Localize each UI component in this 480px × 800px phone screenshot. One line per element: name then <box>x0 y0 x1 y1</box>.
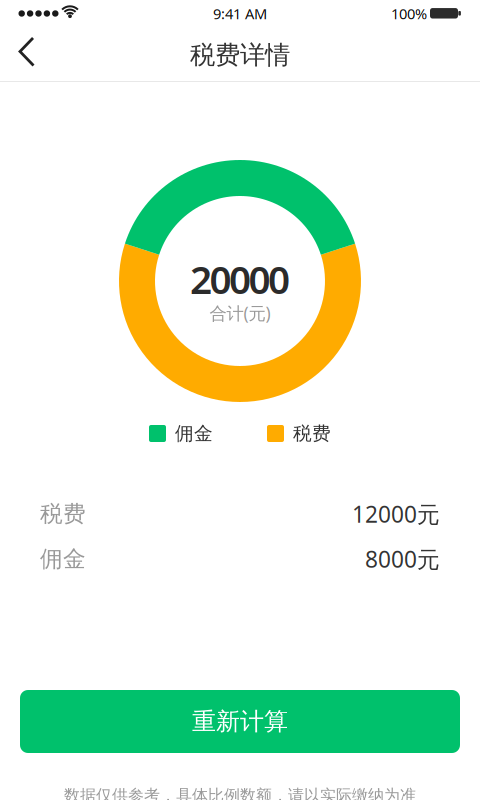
staticText: 合计(元) <box>209 301 270 324</box>
button[interactable]: 重新计算 <box>20 690 460 753</box>
staticText: 佣金 <box>175 422 213 445</box>
staticText: 重新计算 <box>192 707 288 736</box>
staticText: 20000 <box>190 253 290 305</box>
staticText: 佣金 <box>40 545 86 573</box>
staticText: 税费 <box>293 422 331 445</box>
staticText: 税费详情 <box>190 39 290 70</box>
staticText: 8000元 <box>365 544 440 574</box>
staticText: 100% <box>391 4 427 23</box>
staticText: 12000元 <box>352 499 440 529</box>
staticText: 税费 <box>40 500 86 528</box>
button[interactable]: Back <box>3 31 51 73</box>
staticText: 9:41 AM <box>213 4 267 23</box>
staticText: 数据仅供参考，具体比例数额，请以实际缴纳为准 <box>64 786 416 800</box>
